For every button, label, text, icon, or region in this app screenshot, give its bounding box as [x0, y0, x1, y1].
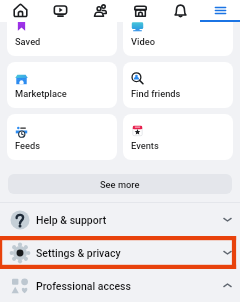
- button[interactable]: Video: [40, 0, 80, 22]
- button[interactable]: Marketplace: [7, 62, 117, 108]
- staticText: Events: [131, 140, 159, 151]
- button[interactable]: Friends: [80, 0, 120, 22]
- button[interactable]: Notifications: [160, 0, 200, 22]
- button[interactable]: Feeds: [7, 114, 117, 160]
- staticText: Professional access: [36, 280, 131, 292]
- button[interactable]: See more: [8, 174, 232, 194]
- staticText: See more: [100, 179, 140, 190]
- staticText: Marketplace: [15, 88, 67, 99]
- staticText: Feeds: [15, 140, 41, 151]
- button[interactable]: Saved: [7, 22, 117, 56]
- button[interactable]: Professional access: [0, 269, 240, 302]
- button[interactable]: Settings & privacy: [0, 236, 240, 269]
- staticText: Help & support: [36, 214, 107, 226]
- staticText: Settings & privacy: [36, 247, 121, 259]
- button[interactable]: Home: [0, 0, 40, 22]
- staticText: Find friends: [131, 88, 181, 99]
- button[interactable]: Video: [123, 22, 233, 56]
- button[interactable]: Menu: [200, 0, 240, 22]
- staticText: Video: [131, 36, 155, 47]
- button[interactable]: Events: [123, 114, 233, 160]
- button[interactable]: Find friends: [123, 62, 233, 108]
- button[interactable]: Marketplace: [120, 0, 160, 22]
- button[interactable]: Help & support: [0, 203, 240, 236]
- staticText: Saved: [15, 36, 41, 47]
